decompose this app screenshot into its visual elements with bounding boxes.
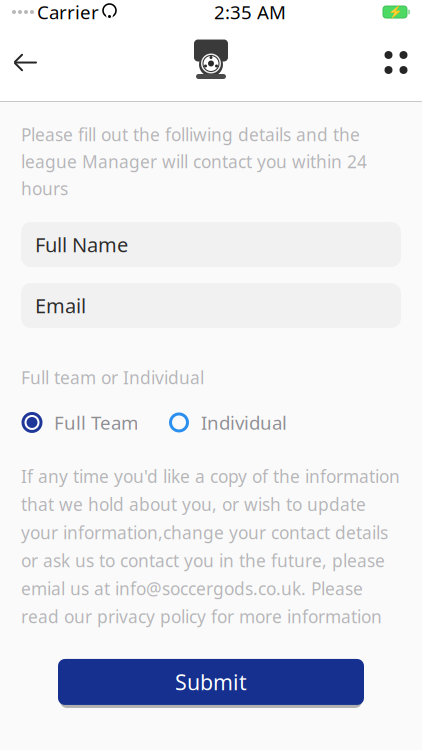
- button[interactable]: Back: [0, 35, 52, 89]
- staticText: Full Team: [54, 410, 138, 435]
- button[interactable]: Individual: [168, 406, 287, 439]
- staticText: Submit: [175, 668, 247, 696]
- staticText: Individual: [201, 410, 287, 435]
- staticText: 2:35 AM: [214, 0, 286, 24]
- button[interactable]: Submit: [53, 654, 369, 710]
- staticText: Full Name: [35, 231, 128, 258]
- staticText: Please fill out the folliwing details an…: [21, 123, 367, 200]
- button[interactable]: Full Team: [21, 406, 138, 439]
- staticText: If any time you'd like a copy of the inf…: [21, 465, 400, 628]
- staticText: ⚡: [387, 5, 402, 19]
- staticText: Full team or Individual: [21, 366, 204, 389]
- staticText: Carrier: [37, 0, 99, 24]
- button[interactable]: Menu: [370, 35, 422, 89]
- staticText: Email: [35, 292, 86, 319]
